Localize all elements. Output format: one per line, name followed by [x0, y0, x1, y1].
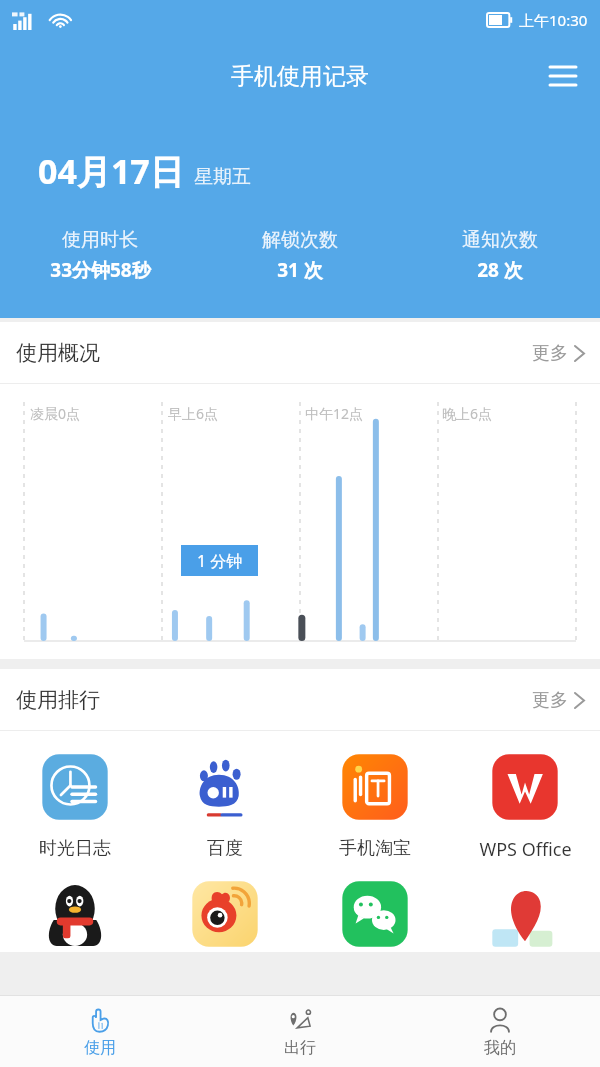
staticText: 凌晨0点 [30, 404, 81, 423]
button[interactable]: 解锁次数 [200, 228, 400, 283]
staticText: 我的 [484, 1038, 516, 1058]
staticText: 解锁次数 [262, 228, 338, 252]
staticText: 31 次 [277, 257, 323, 283]
button[interactable]: 手机淘宝 [300, 749, 450, 860]
button[interactable]: 使用排行 [0, 669, 600, 731]
staticText: 使用排行 [16, 687, 100, 713]
staticText: 上午10:30 [519, 10, 588, 30]
staticText: 更多 [532, 689, 568, 712]
staticText: 28 次 [477, 257, 523, 283]
button[interactable]: 微信 [300, 876, 450, 952]
button[interactable]: 百度地图 [450, 876, 600, 952]
staticText: 手机使用记录 [231, 62, 369, 91]
staticText: 时光日志 [39, 837, 111, 860]
staticText: 晚上6点 [442, 404, 493, 423]
staticText: 1 分钟 [197, 550, 243, 572]
staticText: 使用时长 [62, 228, 138, 252]
staticText: 百度 [207, 837, 243, 860]
button[interactable]: 我的 [400, 996, 600, 1067]
staticText: 使用概况 [16, 340, 100, 366]
staticText: 通知次数 [462, 228, 538, 252]
button[interactable]: 时光日志 [0, 749, 150, 860]
staticText: 出行 [284, 1038, 316, 1058]
button[interactable]: 出行 [200, 996, 400, 1067]
staticText: WPS Office [479, 837, 572, 862]
button[interactable]: 微博 [150, 876, 300, 952]
button[interactable]: 使用 [0, 996, 200, 1067]
staticText: 星期五 [194, 165, 251, 189]
button[interactable]: 使用概况 [0, 322, 600, 384]
button[interactable]: Menu [540, 53, 586, 99]
staticText: 33分钟58秒 [50, 257, 151, 283]
staticText: 中午12点 [305, 404, 364, 423]
staticText: 手机淘宝 [339, 837, 411, 860]
button[interactable]: WPS Office [450, 749, 600, 862]
button[interactable]: 使用时长 [0, 228, 200, 283]
staticText: 04月17日 [38, 148, 184, 194]
button[interactable]: QQ [0, 876, 150, 952]
button[interactable]: 通知次数 [400, 228, 600, 283]
button[interactable]: 百度 [150, 749, 300, 860]
staticText: 使用 [84, 1038, 116, 1058]
staticText: 早上6点 [168, 404, 219, 423]
staticText: 更多 [532, 342, 568, 365]
